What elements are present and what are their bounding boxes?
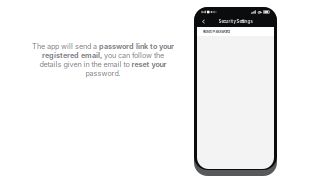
button[interactable]: Reset Password [197,27,274,36]
staticText: Security Settings [218,19,252,24]
staticText: details given in the email to reset your [39,60,166,69]
button[interactable]: Back [199,17,208,26]
staticText: password. [85,69,120,78]
staticText: registered email, you can follow the [42,51,164,60]
staticText: Reset Password [202,29,229,34]
staticText: The app will send a password link to you… [32,42,174,51]
